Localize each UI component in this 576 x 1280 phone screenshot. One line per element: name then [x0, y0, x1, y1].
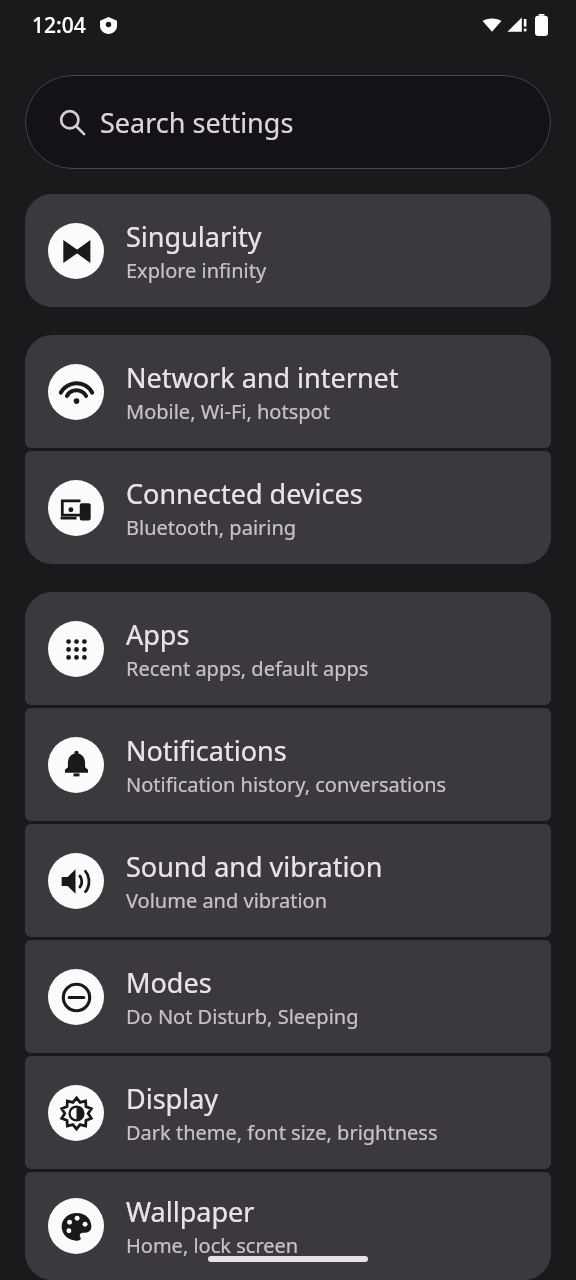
staticText: Modes — [126, 964, 212, 1001]
button[interactable]: Notifications — [25, 708, 551, 821]
button[interactable]: Network and internet — [25, 335, 551, 448]
staticText: Apps — [126, 616, 190, 653]
button[interactable]: Modes — [25, 940, 551, 1053]
button[interactable]: Singularity — [25, 194, 551, 307]
staticText: Search settings — [100, 104, 294, 141]
staticText: Recent apps, default apps — [126, 655, 369, 682]
staticText: Volume and vibration — [126, 887, 328, 914]
staticText: Dark theme, font size, brightness — [126, 1119, 438, 1146]
button[interactable]: Wallpaper — [25, 1172, 551, 1280]
staticText: 12:04 — [32, 11, 86, 40]
staticText: Wallpaper — [126, 1193, 255, 1230]
staticText: Display — [126, 1080, 219, 1117]
button[interactable]: Apps — [25, 592, 551, 705]
staticText: Do Not Disturb, Sleeping — [126, 1003, 359, 1030]
button[interactable]: Sound and vibration — [25, 824, 551, 937]
staticText: Mobile, Wi-Fi, hotspot — [126, 398, 330, 425]
staticText: Notification history, conversations — [126, 771, 447, 798]
staticText: Explore infinity — [126, 257, 267, 284]
other: Search — [59, 109, 86, 136]
button[interactable]: Search — [25, 75, 551, 169]
button[interactable]: Connected devices — [25, 451, 551, 564]
staticText: Home, lock screen — [126, 1232, 299, 1259]
staticText: Notifications — [126, 732, 287, 769]
staticText: Singularity — [126, 218, 262, 255]
staticText: Network and internet — [126, 359, 399, 396]
staticText: Connected devices — [126, 475, 363, 512]
button[interactable]: Display — [25, 1056, 551, 1169]
staticText: Sound and vibration — [126, 848, 383, 885]
staticText: Bluetooth, pairing — [126, 514, 297, 541]
